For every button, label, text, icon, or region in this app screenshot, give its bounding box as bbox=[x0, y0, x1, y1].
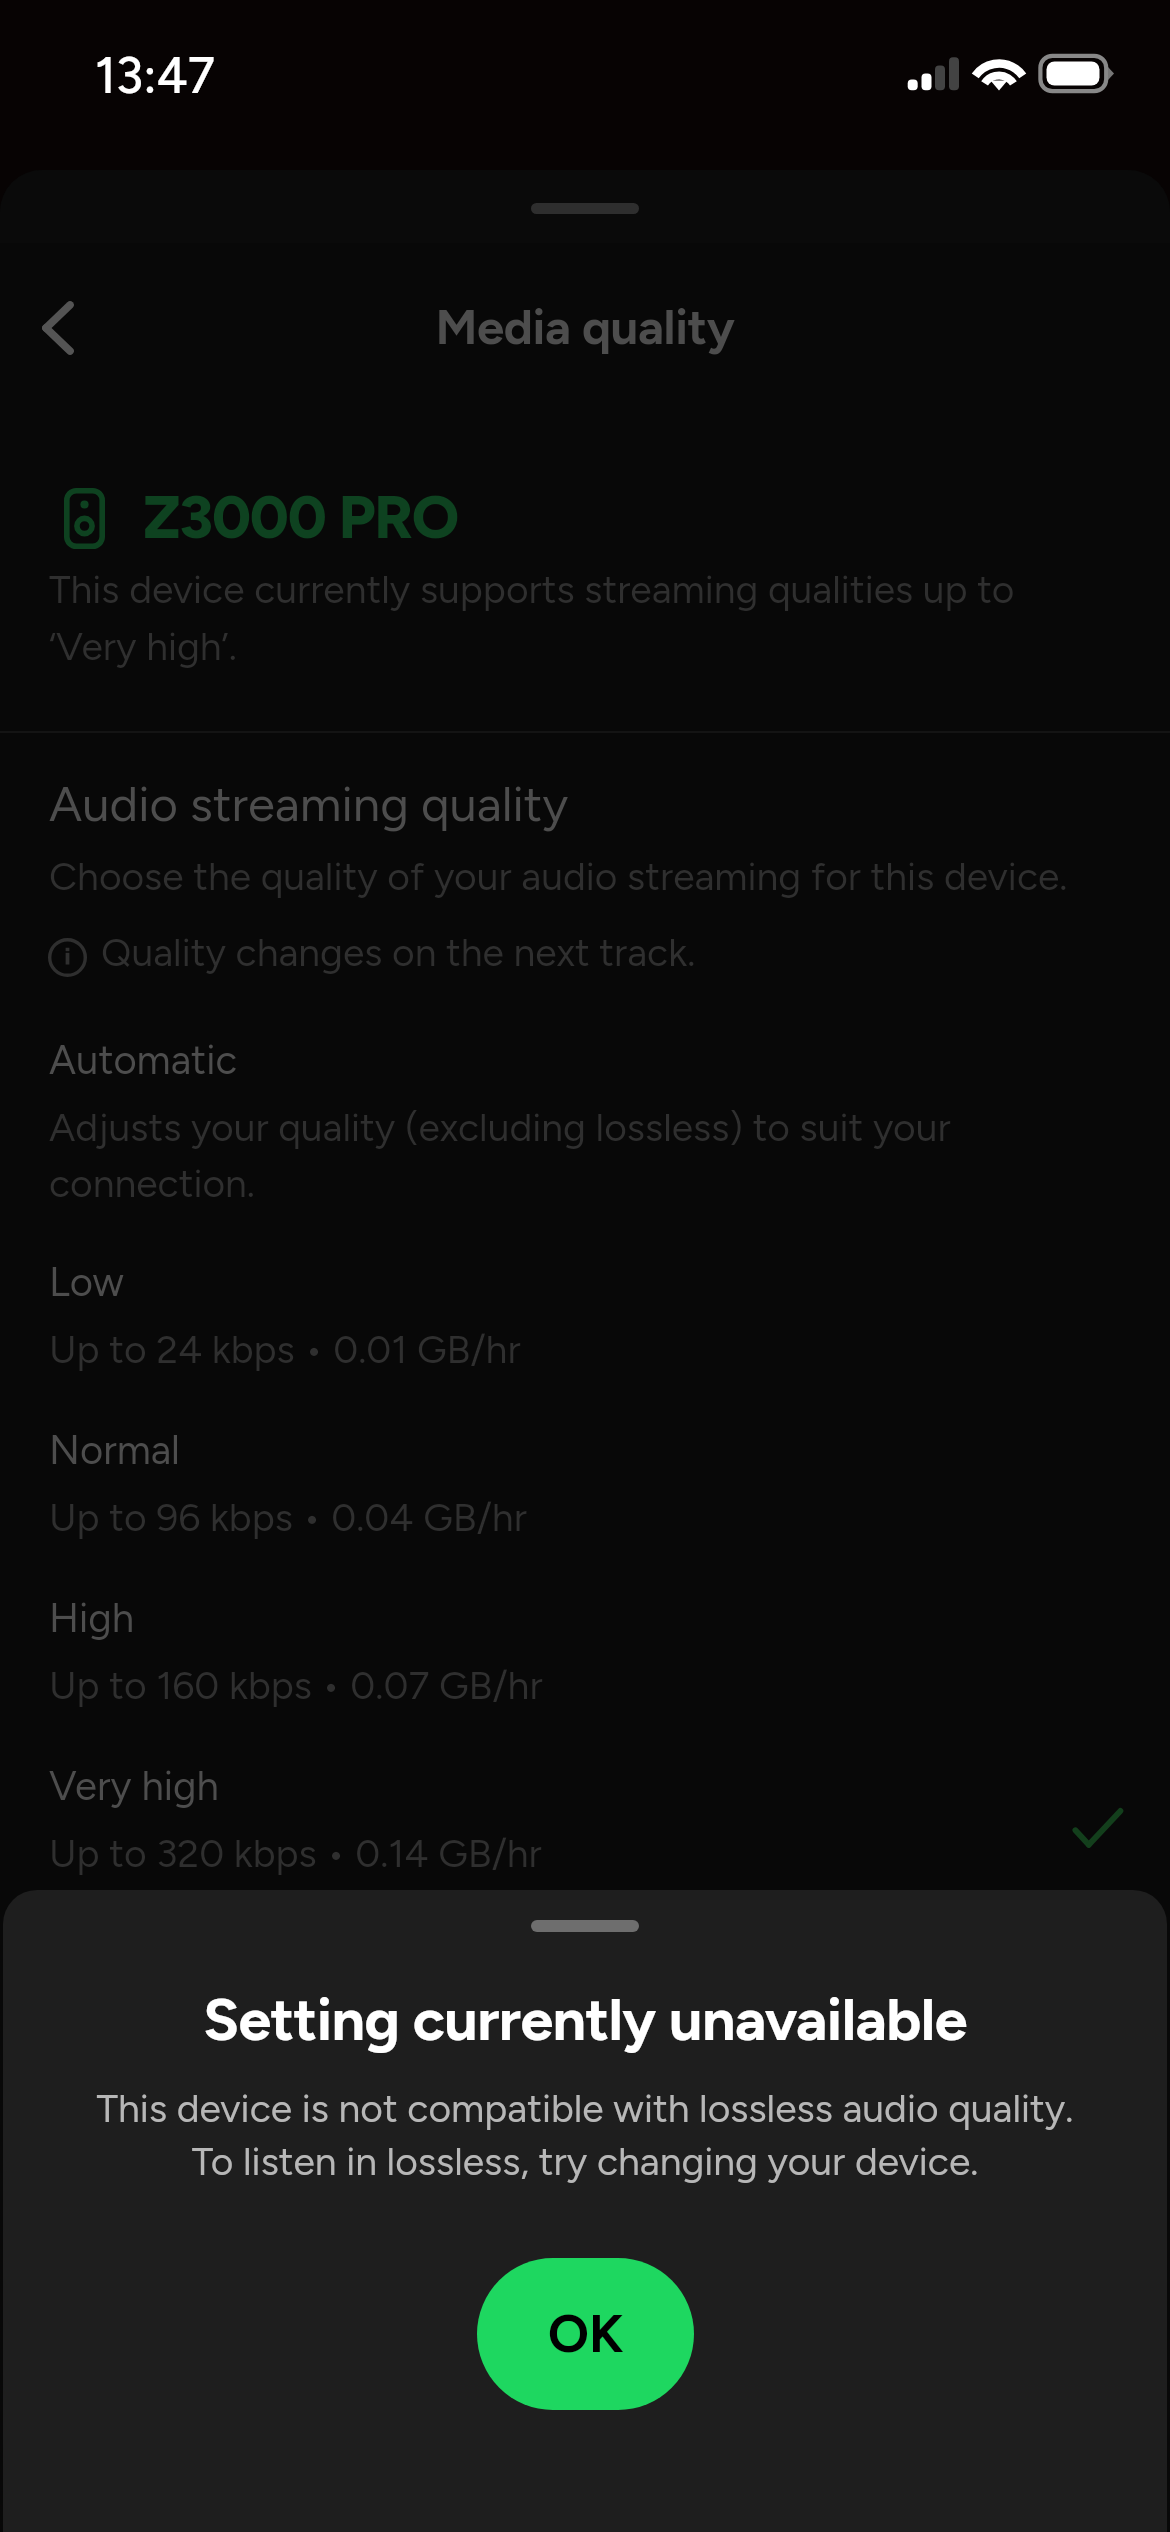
staticText: Normal bbox=[49, 1426, 180, 1474]
staticText: 13:47 bbox=[95, 45, 215, 105]
button[interactable]: Low bbox=[0, 1258, 1170, 1408]
staticText: Up to 320 kbps • 0.14 GB/hr bbox=[49, 1830, 542, 1877]
staticText: Low bbox=[49, 1258, 124, 1306]
button[interactable]: OK bbox=[477, 2258, 694, 2410]
staticText: Automatic bbox=[49, 1036, 238, 1084]
staticText: Up to 160 kbps • 0.07 GB/hr bbox=[49, 1662, 543, 1709]
staticText: Choose the quality of your audio streami… bbox=[49, 853, 1068, 900]
staticText: Audio streaming quality bbox=[49, 774, 569, 833]
staticText: Up to 24 kbps • 0.01 GB/hr bbox=[49, 1326, 521, 1373]
button[interactable]: Normal bbox=[0, 1426, 1170, 1576]
staticText: OK bbox=[548, 2303, 624, 2365]
staticText: Very high bbox=[49, 1762, 219, 1810]
staticText: Setting currently unavailable bbox=[3, 1984, 1167, 2055]
staticText: Media quality bbox=[0, 297, 1170, 356]
button[interactable]: High bbox=[0, 1594, 1170, 1744]
button[interactable]: Very high bbox=[0, 1762, 1170, 1922]
staticText: Up to 96 kbps • 0.04 GB/hr bbox=[49, 1494, 527, 1541]
button[interactable]: Back bbox=[13, 283, 103, 373]
staticText: Quality changes on the next track. bbox=[101, 929, 696, 976]
staticText: This device currently supports streaming… bbox=[49, 566, 1015, 670]
button[interactable]: Automatic bbox=[0, 1036, 1170, 1186]
staticText: Z3000 PRO bbox=[143, 481, 459, 553]
staticText: Adjusts your quality (excluding lossless… bbox=[49, 1104, 951, 1207]
staticText: High bbox=[49, 1594, 135, 1642]
staticText: This device is not compatible with lossl… bbox=[3, 2085, 1167, 2185]
